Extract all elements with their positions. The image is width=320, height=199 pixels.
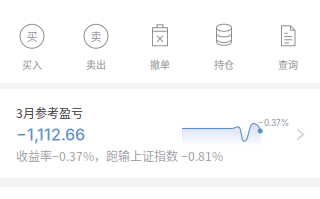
staticText: −0.37%: [258, 118, 289, 128]
staticText: 卖出: [86, 57, 106, 72]
staticText: 买: [26, 28, 37, 44]
staticText: 买入: [22, 57, 42, 72]
button[interactable]: 买: [0, 11, 64, 86]
staticText: 卖: [90, 28, 101, 44]
staticText: 查询: [278, 57, 298, 72]
button[interactable]: 查询: [256, 11, 320, 86]
staticText: 3月参考盈亏: [16, 104, 83, 121]
button[interactable]: 3月参考盈亏: [0, 89, 320, 178]
button[interactable]: 撤单: [128, 11, 192, 86]
staticText: 收益率−0.37%，跑输上证指数 −0.81%: [16, 147, 223, 164]
button[interactable]: 持仓: [192, 11, 256, 86]
staticText: 持仓: [214, 57, 234, 72]
button[interactable]: 卖: [64, 11, 128, 86]
staticText: −1,112.66: [16, 125, 85, 144]
staticText: 撤单: [150, 57, 170, 72]
